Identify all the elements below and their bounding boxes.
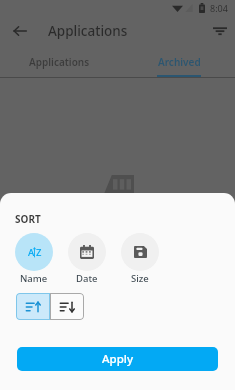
- button[interactable]: Sort descending: [50, 293, 84, 320]
- button[interactable]: Filter: [199, 16, 235, 46]
- button[interactable]: Apply: [17, 347, 218, 371]
- staticText: Applications: [29, 55, 90, 69]
- staticText: Archived: [158, 55, 201, 69]
- staticText: Name: [20, 272, 48, 285]
- button[interactable]: Back: [2, 16, 38, 46]
- button[interactable]: A: [15, 233, 53, 285]
- button[interactable]: Archived: [117, 46, 235, 77]
- staticText: A: [28, 246, 35, 259]
- button[interactable]: Applications: [0, 46, 117, 77]
- staticText: SORT: [15, 212, 41, 226]
- button[interactable]: Sort ascending: [16, 293, 50, 320]
- staticText: Apply: [102, 351, 133, 367]
- staticText: 8:04: [210, 2, 228, 14]
- staticText: Applications: [48, 22, 128, 40]
- staticText: Date: [76, 272, 98, 285]
- button[interactable]: Size: [121, 233, 159, 285]
- staticText: Z: [36, 246, 42, 259]
- button[interactable]: Date: [68, 233, 106, 285]
- staticText: Size: [131, 272, 149, 285]
